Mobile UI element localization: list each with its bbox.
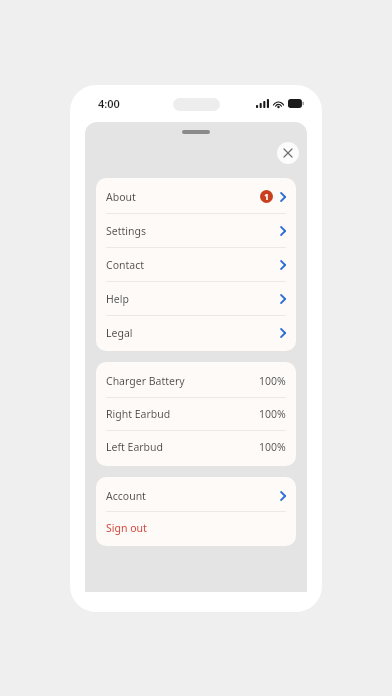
staticText: Settings bbox=[106, 224, 146, 238]
button[interactable]: Legal bbox=[96, 316, 296, 349]
staticText: Account bbox=[106, 489, 146, 503]
button[interactable]: Charger Battery bbox=[96, 365, 296, 397]
button[interactable]: Settings bbox=[96, 214, 296, 247]
staticText: Charger Battery bbox=[106, 374, 185, 388]
staticText: Right Earbud bbox=[106, 407, 171, 421]
staticText: 100% bbox=[259, 407, 286, 421]
button[interactable]: Help bbox=[96, 282, 296, 315]
staticText: 100% bbox=[259, 440, 286, 454]
staticText: Left Earbud bbox=[106, 440, 164, 454]
staticText: 1 bbox=[264, 191, 269, 202]
staticText: About bbox=[106, 190, 136, 204]
button[interactable]: Left Earbud bbox=[96, 431, 296, 463]
button[interactable]: Close bbox=[277, 142, 299, 164]
button[interactable]: Sign out bbox=[96, 512, 296, 543]
staticText: 100% bbox=[259, 374, 286, 388]
staticText: 4:00 bbox=[98, 96, 120, 111]
button[interactable]: About bbox=[96, 180, 296, 213]
staticText: Contact bbox=[106, 258, 144, 272]
staticText: Legal bbox=[106, 326, 133, 340]
staticText: Sign out bbox=[106, 521, 147, 535]
button[interactable]: Right Earbud bbox=[96, 398, 296, 430]
button[interactable]: Account bbox=[96, 480, 296, 511]
button[interactable]: Contact bbox=[96, 248, 296, 281]
staticText: Help bbox=[106, 292, 129, 306]
